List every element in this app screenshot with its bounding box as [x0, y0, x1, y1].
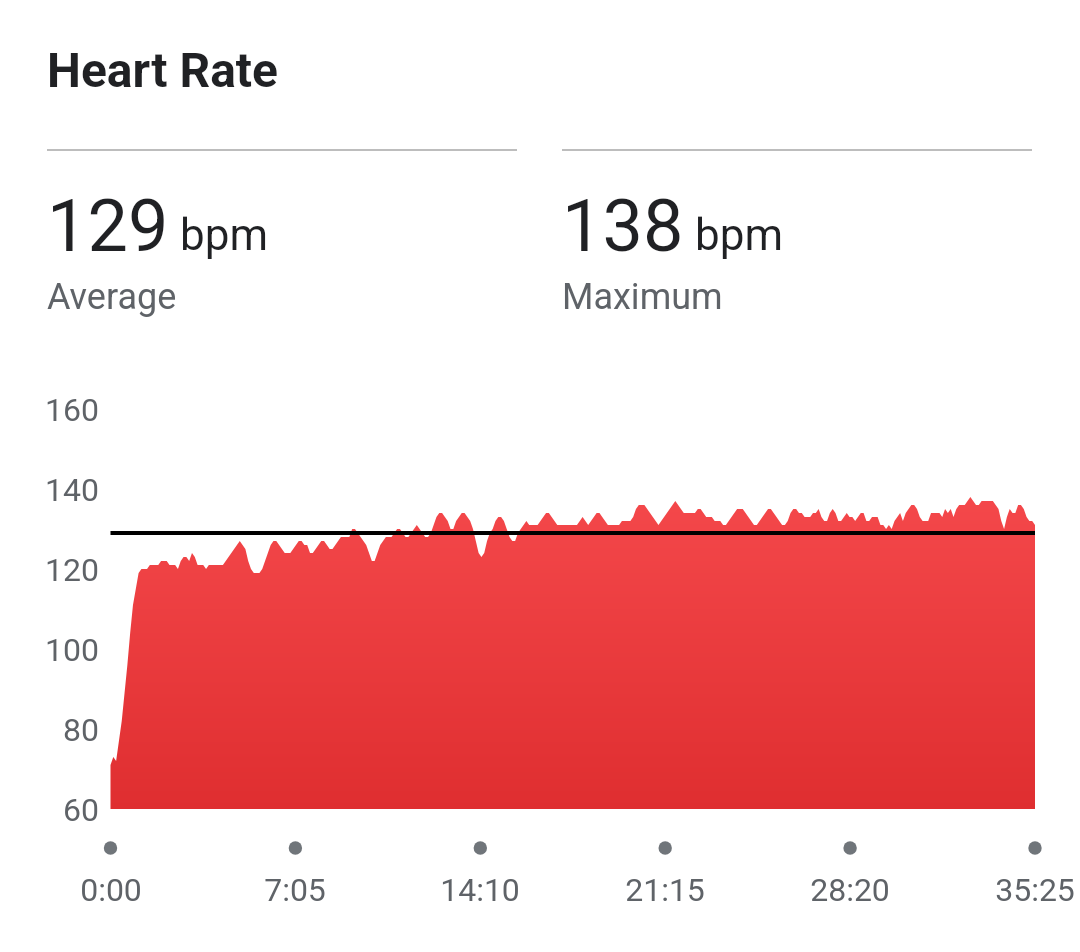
staticText: 160 — [0, 391, 99, 429]
staticText: Average — [47, 276, 177, 318]
staticText: bpm — [180, 209, 268, 261]
button[interactable]: 129 — [47, 149, 517, 324]
staticText: 60 — [0, 791, 99, 829]
staticText: 14:10 — [390, 871, 570, 909]
staticText: 140 — [0, 471, 99, 509]
staticText: 80 — [0, 711, 99, 749]
staticText: 120 — [0, 551, 99, 589]
staticText: 35:25 — [945, 871, 1080, 909]
staticText: Heart Rate — [47, 42, 279, 98]
staticText: 129 — [47, 184, 169, 268]
button[interactable]: 138 — [562, 149, 1032, 324]
staticText: 7:05 — [205, 871, 385, 909]
staticText: bpm — [695, 209, 783, 261]
staticText: 138 — [562, 184, 684, 268]
staticText: 100 — [0, 631, 99, 669]
staticText: 0:00 — [21, 871, 201, 909]
staticText: Maximum — [562, 276, 723, 318]
staticText: 28:20 — [760, 871, 940, 909]
staticText: 21:15 — [575, 871, 755, 909]
button[interactable]: Heart Rate — [47, 42, 287, 98]
other: Heart rate chart — [0, 0, 1080, 952]
